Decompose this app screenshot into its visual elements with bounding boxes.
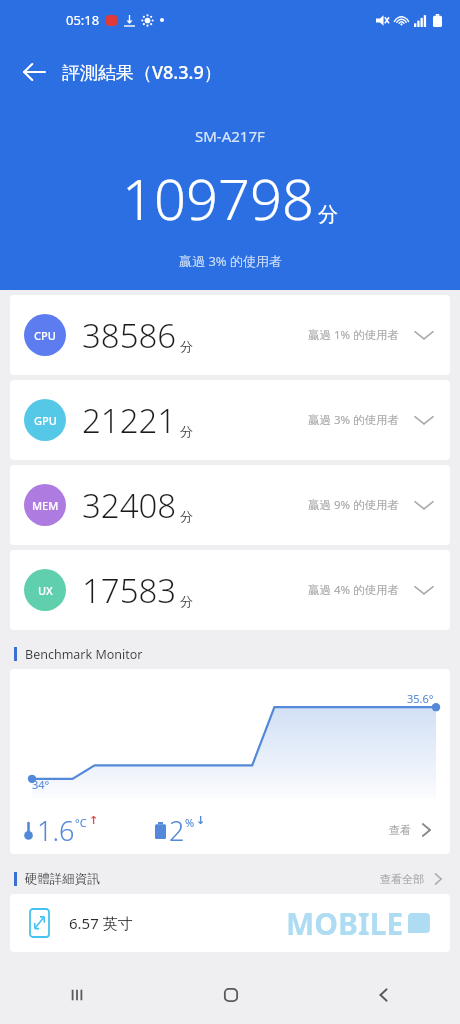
button[interactable]: 返回 — [10, 48, 58, 96]
other: 展開 — [412, 578, 436, 602]
button[interactable]: 6.57 英寸 — [10, 894, 450, 952]
staticText: MEM — [32, 498, 59, 513]
staticText: 17583 — [82, 568, 177, 613]
button[interactable]: GPU — [10, 380, 450, 460]
staticText: CPU — [34, 328, 56, 343]
staticText: ↓ — [196, 814, 206, 827]
button[interactable]: 查看 — [389, 820, 436, 840]
button[interactable]: 34° — [10, 669, 450, 854]
staticText: Benchmark Monitor — [25, 646, 143, 663]
staticText: °C — [75, 815, 87, 830]
button[interactable]: 查看全部 — [380, 871, 446, 887]
button[interactable]: 主畫面 — [154, 966, 307, 1024]
staticText: MOBILE — [286, 903, 404, 944]
staticText: 分 — [318, 202, 338, 227]
staticText: 贏過 1% 的使用者 — [308, 327, 400, 343]
staticText: SM-A217F — [195, 126, 265, 146]
button[interactable]: 最近使用 — [0, 966, 154, 1024]
staticText: 109798 — [122, 160, 314, 236]
other: 展開 — [412, 408, 436, 432]
staticText: 查看全部 — [380, 872, 424, 886]
staticText: 分 — [180, 338, 193, 354]
staticText: 查看 — [389, 823, 411, 837]
staticText: GPU — [34, 413, 57, 428]
staticText: 贏過 3% 的使用者 — [308, 412, 400, 428]
staticText: 2 — [169, 812, 185, 849]
staticText: ↑ — [89, 814, 99, 827]
staticText: 05:18 — [66, 11, 100, 29]
staticText: 32408 — [82, 483, 177, 528]
staticText: 38586 — [82, 313, 177, 358]
staticText: 硬體詳細資訊 — [25, 871, 100, 887]
staticText: 分 — [180, 423, 193, 439]
staticText: UX — [38, 583, 53, 598]
staticText: 贏過 9% 的使用者 — [308, 497, 400, 513]
staticText: 34° — [32, 777, 50, 792]
button[interactable]: MEM — [10, 465, 450, 545]
staticText: % — [185, 815, 195, 830]
staticText: 35.6° — [407, 691, 434, 706]
staticText: 21221 — [82, 398, 177, 443]
staticText: 分 — [180, 593, 193, 609]
staticText: 6.57 英寸 — [69, 913, 133, 933]
staticText: 評測結果（V8.3.9） — [62, 60, 222, 85]
other: 展開 — [412, 323, 436, 347]
staticText: 1.6 — [37, 812, 75, 849]
staticText: 贏過 3% 的使用者 — [179, 252, 282, 270]
staticText: 贏過 4% 的使用者 — [308, 582, 400, 598]
button[interactable]: UX — [10, 550, 450, 630]
other: 展開 — [412, 493, 436, 517]
button[interactable]: CPU — [10, 295, 450, 375]
staticText: 分 — [180, 508, 193, 524]
button[interactable]: 返回 — [307, 966, 460, 1024]
